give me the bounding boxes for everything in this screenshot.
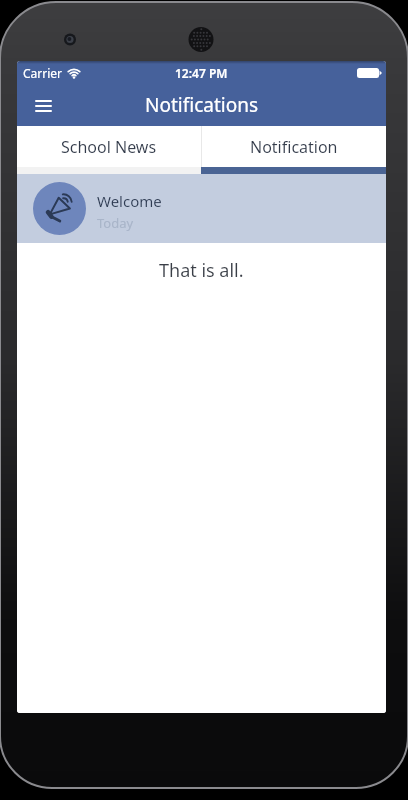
button[interactable]: Welcome [17,174,386,243]
staticText: Today [97,214,134,232]
staticText: School News [61,136,157,158]
staticText: Notification [250,136,338,158]
button[interactable] [35,99,51,113]
staticText: Carrier [23,65,63,81]
staticText: Welcome [97,191,162,211]
button[interactable]: School News [17,126,201,167]
staticText: That is all. [159,258,244,283]
staticText: 12:47 PM [175,65,228,81]
button[interactable]: Notification [202,126,386,167]
staticText: Notifications [145,92,259,118]
